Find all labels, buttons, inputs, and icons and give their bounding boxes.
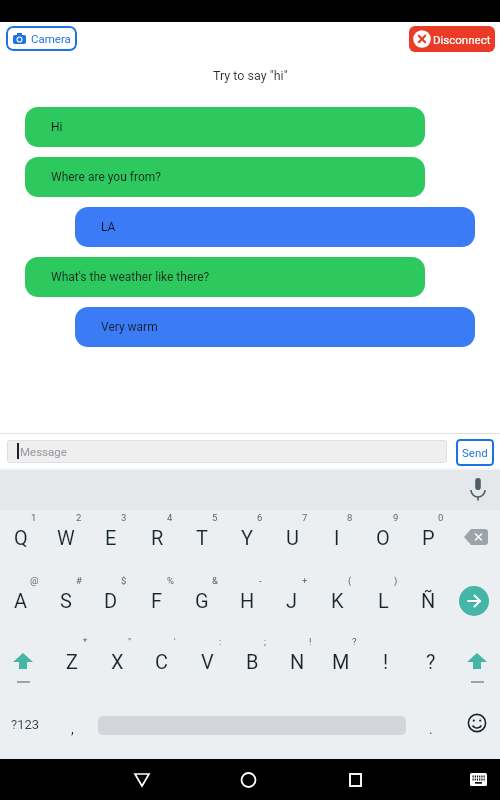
button[interactable]: What's the weather like there?: [25, 257, 425, 297]
staticText: ;: [264, 636, 267, 647]
staticText: 9: [393, 512, 399, 523]
staticText: T: [196, 526, 208, 549]
staticText: Camera: [31, 32, 71, 45]
staticText: V: [201, 650, 214, 673]
button[interactable]: LA: [75, 207, 475, 247]
staticText: 1: [31, 512, 37, 523]
staticText: #: [76, 575, 82, 586]
staticText: ?: [352, 636, 357, 647]
staticText: :: [219, 636, 222, 647]
staticText: I: [334, 526, 340, 549]
staticText: ): [394, 575, 398, 586]
staticText: Ñ: [421, 589, 436, 612]
staticText: @: [30, 575, 39, 586]
staticText: K: [331, 589, 344, 612]
button[interactable]: Send: [456, 439, 494, 466]
staticText: +: [302, 575, 308, 586]
staticText: L: [378, 589, 389, 612]
staticText: C: [155, 650, 169, 673]
staticText: Try to say "hi": [213, 68, 288, 83]
staticText: %: [167, 575, 174, 586]
button[interactable]: Hi: [25, 107, 425, 147]
staticText: Hi: [51, 120, 63, 134]
staticText: X: [111, 650, 124, 673]
staticText: R: [151, 526, 164, 549]
staticText: *: [83, 636, 88, 647]
staticText: N: [290, 650, 305, 673]
staticText: 6: [257, 512, 263, 523]
staticText: 4: [167, 512, 173, 523]
staticText: Z: [66, 650, 78, 673]
button[interactable]: Message: [7, 440, 447, 463]
staticText: .: [429, 721, 433, 737]
button[interactable]: Disconnect: [409, 26, 495, 52]
staticText: !: [309, 636, 312, 647]
staticText: D: [104, 589, 118, 612]
staticText: 5: [212, 512, 218, 523]
staticText: U: [286, 526, 299, 549]
staticText: ': [174, 636, 176, 647]
staticText: ,: [71, 721, 74, 737]
button[interactable]: Where are you from?: [25, 157, 425, 197]
staticText: G: [195, 589, 209, 612]
button[interactable]: [241, 772, 257, 788]
staticText: Message: [20, 445, 67, 458]
staticText: A: [14, 589, 28, 612]
staticText: Very warm: [101, 320, 158, 334]
staticText: 7: [302, 512, 308, 523]
staticText: &: [212, 575, 218, 586]
staticText: O: [376, 526, 390, 549]
staticText: 0: [438, 512, 444, 523]
staticText: ?: [426, 650, 436, 673]
staticText: F: [151, 589, 163, 612]
staticText: W: [57, 526, 75, 549]
button[interactable]: [470, 773, 487, 786]
staticText: S: [60, 589, 72, 612]
staticText: Where are you from?: [51, 170, 161, 184]
staticText: $: [121, 575, 127, 586]
staticText: P: [422, 526, 435, 549]
staticText: E: [105, 526, 117, 549]
button[interactable]: [134, 773, 150, 787]
staticText: LA: [101, 220, 116, 234]
staticText: (: [348, 575, 352, 586]
button[interactable]: [459, 586, 489, 616]
staticText: 3: [121, 512, 127, 523]
staticText: Q: [14, 526, 28, 549]
button[interactable]: Very warm: [75, 307, 475, 347]
staticText: Disconnect: [433, 33, 491, 46]
staticText: J: [286, 589, 298, 612]
button[interactable]: Camera: [6, 26, 77, 51]
button[interactable]: [349, 773, 362, 787]
staticText: ": [128, 636, 132, 647]
staticText: 8: [347, 512, 353, 523]
staticText: 2: [76, 512, 82, 523]
staticText: Send: [462, 446, 488, 459]
staticText: !: [383, 650, 389, 673]
staticText: Y: [241, 526, 254, 549]
staticText: M: [332, 650, 350, 673]
staticText: What's the weather like there?: [51, 270, 210, 284]
staticText: -: [259, 575, 262, 586]
staticText: ?123: [11, 717, 40, 732]
staticText: B: [246, 650, 259, 673]
staticText: H: [240, 589, 255, 612]
